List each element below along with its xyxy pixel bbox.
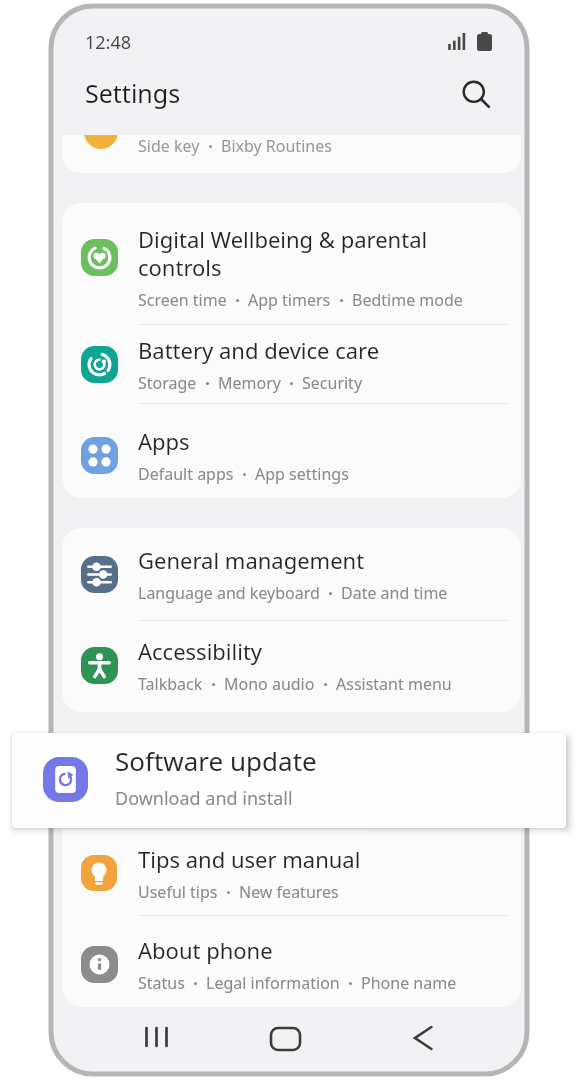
button[interactable]: General management bbox=[62, 535, 521, 613]
staticText: Memory bbox=[218, 372, 281, 394]
staticText: Battery and device care bbox=[138, 335, 380, 365]
staticText: Apps bbox=[138, 426, 190, 456]
staticText: New features bbox=[239, 881, 339, 903]
button[interactable] bbox=[271, 1028, 300, 1050]
staticText: 12:48 bbox=[85, 30, 132, 55]
staticText: Screen time bbox=[138, 289, 227, 311]
staticText: Software update bbox=[115, 743, 317, 778]
staticText: Language and keyboard bbox=[138, 582, 320, 604]
staticText: Digital Wellbeing & parental controls bbox=[138, 224, 468, 282]
button[interactable]: Tips and user manual bbox=[62, 834, 521, 912]
staticText: Assistant menu bbox=[336, 673, 452, 695]
staticText: Talkback bbox=[138, 673, 203, 695]
button[interactable] bbox=[145, 1027, 168, 1047]
staticText: App timers bbox=[248, 289, 331, 311]
staticText: Side key bbox=[138, 135, 200, 157]
button[interactable]: Software update bbox=[12, 733, 566, 828]
staticText: Default apps bbox=[138, 463, 234, 485]
staticText: App settings bbox=[255, 463, 349, 485]
button[interactable]: Accessibility bbox=[62, 626, 521, 704]
staticText: Tips and user manual bbox=[138, 844, 361, 874]
staticText: Legal information bbox=[206, 972, 340, 994]
button[interactable]: Side key bbox=[62, 135, 521, 173]
staticText: Security bbox=[302, 372, 363, 394]
staticText: Date and time bbox=[341, 582, 448, 604]
staticText: Bedtime mode bbox=[352, 289, 463, 311]
staticText: Settings bbox=[85, 76, 181, 110]
staticText: Download and install bbox=[115, 786, 293, 811]
button[interactable]: About phone bbox=[62, 925, 521, 1003]
staticText: Phone name bbox=[361, 972, 457, 994]
staticText: Accessibility bbox=[138, 636, 263, 666]
staticText: Storage bbox=[138, 372, 197, 394]
staticText: Status bbox=[138, 972, 185, 994]
staticText: General management bbox=[138, 545, 365, 575]
button[interactable]: Apps bbox=[62, 416, 521, 494]
button[interactable]: Digital Wellbeing & parental controls bbox=[62, 215, 521, 319]
button[interactable]: Battery and device care bbox=[62, 325, 521, 403]
staticText: Mono audio bbox=[224, 673, 315, 695]
button[interactable] bbox=[462, 80, 490, 108]
staticText: Useful tips bbox=[138, 881, 218, 903]
button[interactable] bbox=[413, 1027, 433, 1049]
staticText: Bixby Routines bbox=[221, 135, 332, 157]
staticText: About phone bbox=[138, 935, 273, 965]
